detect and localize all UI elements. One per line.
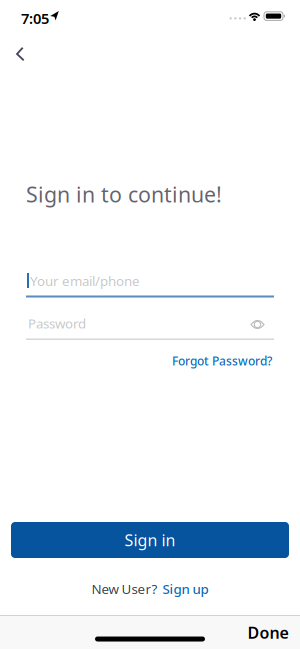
button[interactable]: Back	[6, 42, 40, 68]
staticText: Password	[28, 314, 86, 332]
staticText: 7:05	[21, 8, 49, 28]
staticText: Sign in to continue!	[26, 180, 222, 208]
staticText: Sign in	[124, 529, 175, 551]
button[interactable]: Show password	[247, 316, 269, 333]
staticText: New User?	[91, 580, 157, 598]
staticText: Forgot Password?	[172, 353, 272, 369]
button[interactable]: Sign in	[11, 522, 289, 558]
staticText: Sign up	[162, 580, 208, 598]
staticText: Your email/phone	[30, 272, 140, 290]
staticText: Done	[247, 622, 288, 643]
button[interactable]: Sign up	[162, 580, 208, 598]
button[interactable]: Done	[247, 622, 288, 643]
button[interactable]: Forgot Password?	[172, 353, 272, 369]
